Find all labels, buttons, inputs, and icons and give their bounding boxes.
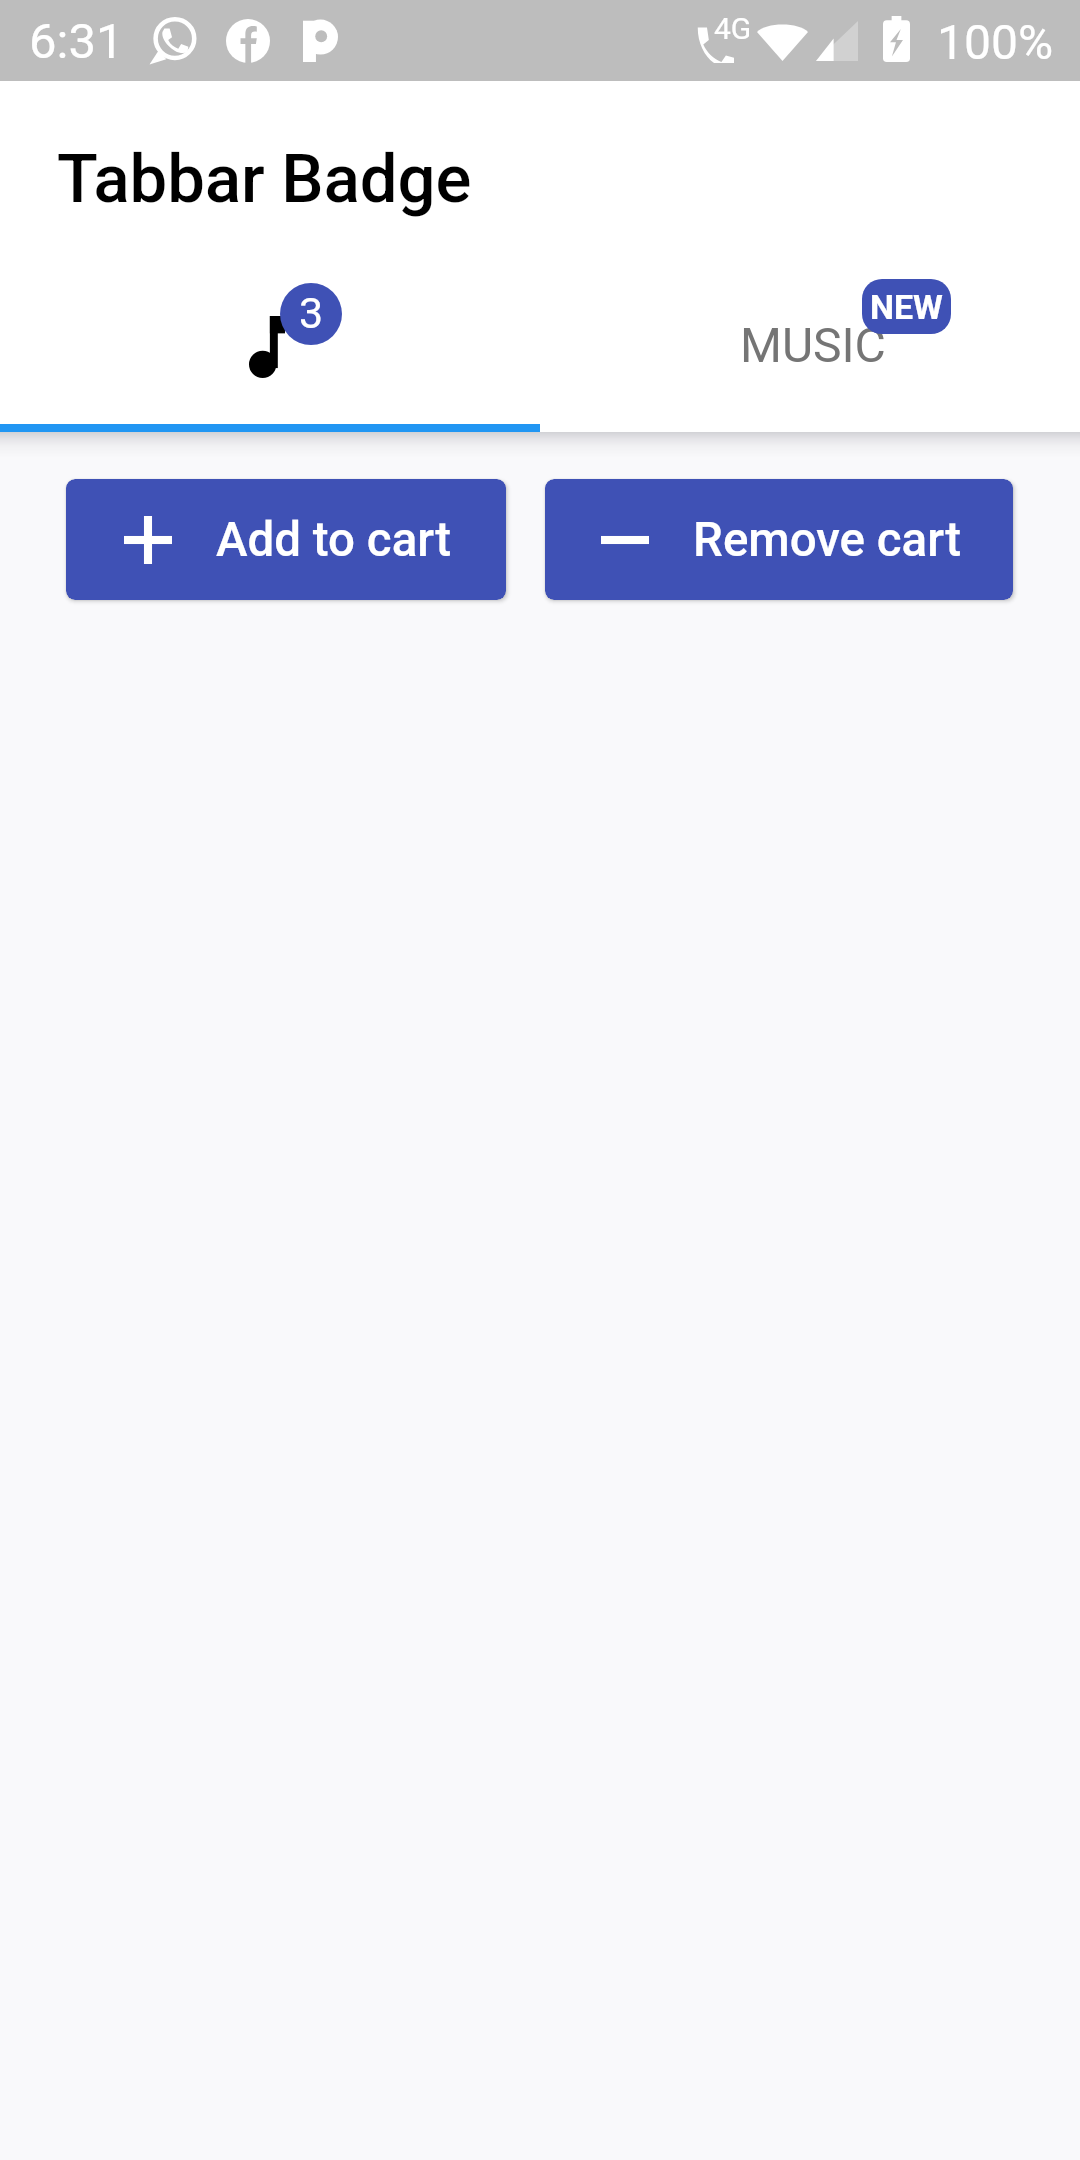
staticText: Remove cart	[693, 512, 961, 568]
staticText: NEW	[870, 287, 943, 327]
staticText: 4G	[714, 11, 752, 46]
button[interactable]: Remove cart	[545, 479, 1013, 600]
staticText: Add to cart	[216, 512, 452, 568]
staticText: Tabbar Badge	[57, 140, 472, 219]
button[interactable]: Music tab, 3 new items	[0, 256, 540, 432]
button[interactable]: Add to cart	[66, 479, 506, 600]
staticText: MUSIC	[740, 317, 886, 373]
staticText: 6:31	[29, 13, 124, 70]
staticText: 3	[299, 288, 324, 338]
button[interactable]: MUSIC	[540, 256, 1080, 432]
staticText: 100%	[937, 14, 1054, 70]
